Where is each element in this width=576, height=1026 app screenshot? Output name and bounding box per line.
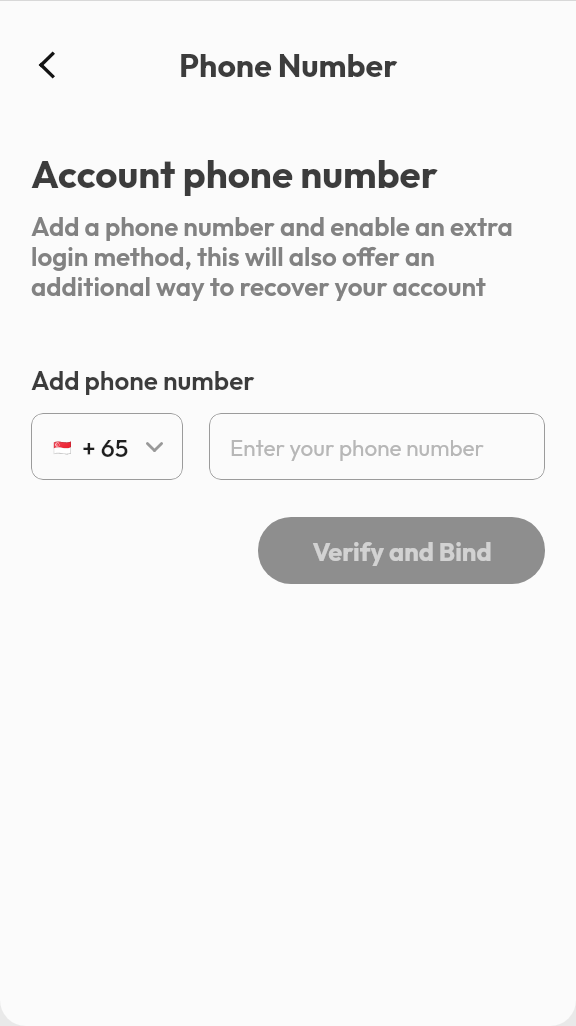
button[interactable]: Enter your phone number — [209, 413, 545, 480]
staticText: + 65 — [82, 432, 129, 464]
staticText: Add a phone number and enable an extra l… — [31, 210, 545, 303]
staticText: Add phone number — [31, 364, 255, 397]
staticText: Account phone number — [31, 149, 438, 198]
button[interactable]: 🇸🇬 — [31, 413, 183, 480]
staticText: Phone Number — [179, 45, 398, 85]
staticText: Enter your phone number — [230, 433, 484, 461]
staticText: Verify and Bind — [312, 535, 492, 567]
staticText: 🇸🇬 — [53, 439, 72, 457]
button[interactable]: Back — [19, 37, 75, 93]
button[interactable]: Verify and Bind — [258, 517, 545, 584]
